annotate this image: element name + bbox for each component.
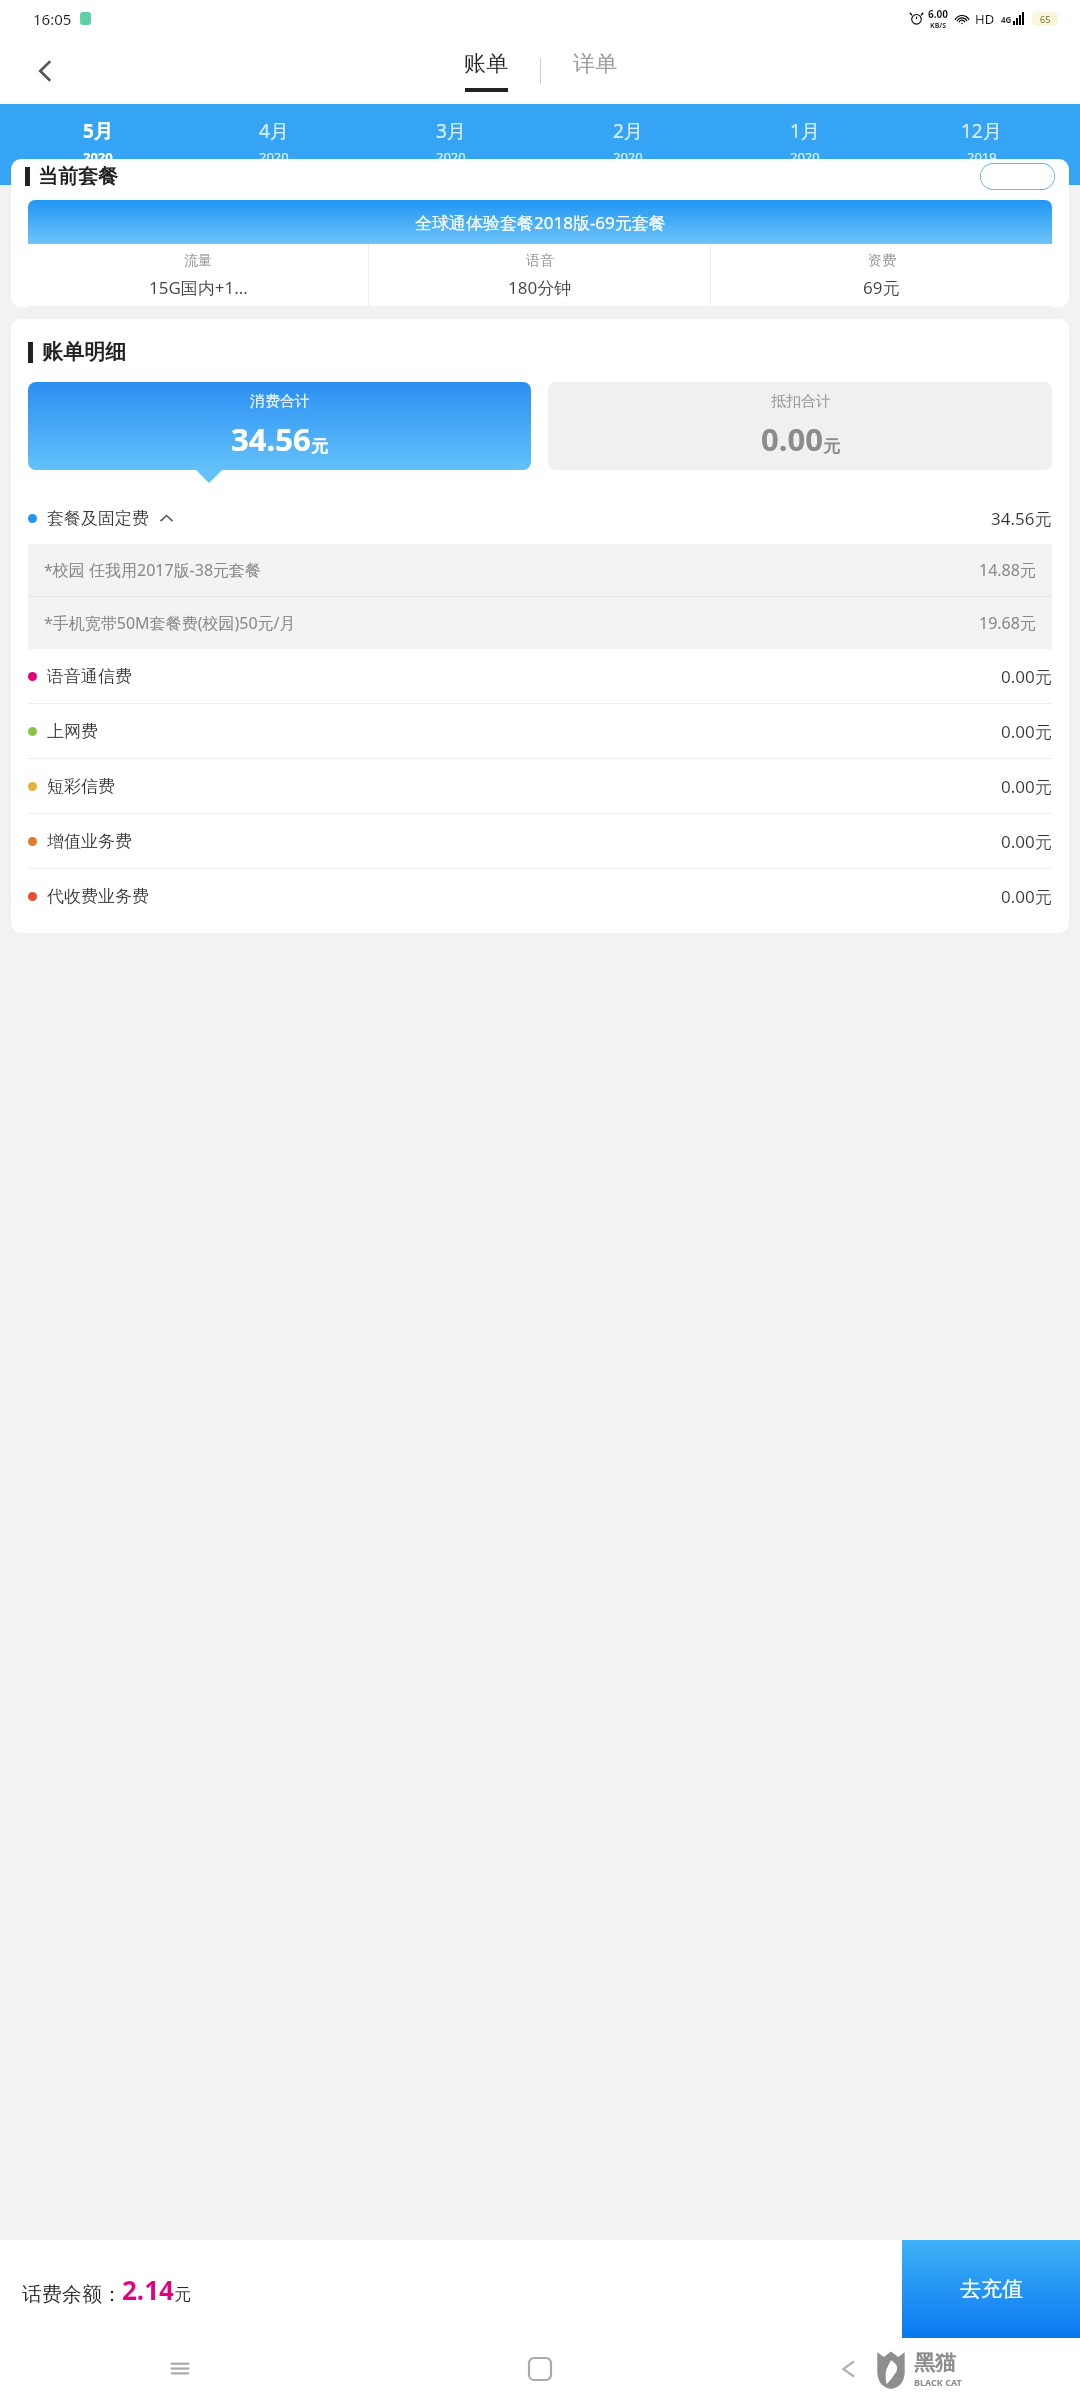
staticText: 2020: [259, 148, 289, 166]
staticText: 详单: [573, 50, 617, 78]
staticText: 34.56元: [991, 507, 1052, 530]
staticText: 2019: [967, 148, 997, 166]
button[interactable]: 1月: [716, 104, 893, 185]
staticText: 元: [311, 436, 328, 457]
staticText: 语音: [526, 252, 554, 270]
button[interactable]: Home: [360, 2338, 720, 2400]
staticText: 账单明细: [42, 339, 126, 365]
staticText: 65: [1040, 13, 1051, 25]
button[interactable]: 5月: [10, 104, 186, 185]
staticText: 180分钟: [508, 276, 572, 299]
staticText: 全球通体验套餐2018版-69元套餐: [415, 211, 666, 234]
button[interactable]: 增值业务费: [11, 814, 1069, 868]
staticText: HD: [975, 10, 995, 28]
button[interactable]: 语音通信费: [11, 649, 1069, 703]
staticText: 元: [823, 436, 840, 457]
button[interactable]: 4月: [186, 104, 362, 185]
staticText: 资费: [868, 252, 896, 270]
staticText: 套餐及固定费: [47, 508, 149, 529]
staticText: 15G国内+1…: [149, 276, 248, 299]
staticText: 元: [174, 2284, 191, 2305]
staticText: 2.14: [122, 2272, 174, 2307]
button[interactable]: Recents: [0, 2338, 360, 2400]
staticText: 69元: [863, 276, 900, 299]
staticText: 上网费: [47, 721, 98, 742]
button[interactable]: 2月: [539, 104, 716, 185]
staticText: KB/S: [930, 21, 947, 31]
staticText: 去充值: [960, 2276, 1023, 2302]
button[interactable]: *手机宽带50M套餐费(校园)50元/月: [28, 597, 1052, 649]
staticText: 16:05: [33, 9, 72, 29]
staticText: 2020: [613, 148, 643, 166]
staticText: 流量: [184, 252, 212, 270]
staticText: 3月: [436, 118, 466, 144]
button[interactable]: 详单: [563, 50, 627, 92]
staticText: 消费合计: [250, 392, 310, 411]
staticText: 0.00元: [1001, 665, 1052, 688]
staticText: 代收费业务费: [47, 886, 149, 907]
staticText: 语音通信费: [47, 666, 132, 687]
staticText: 1月: [790, 118, 820, 144]
staticText: 4G: [1001, 14, 1012, 25]
staticText: 5月: [83, 118, 113, 144]
staticText: *手机宽带50M套餐费(校园)50元/月: [44, 612, 296, 634]
staticText: 0.00元: [1001, 720, 1052, 743]
staticText: BLACK CAT: [914, 2376, 962, 2388]
button[interactable]: Back: [18, 44, 72, 98]
other: Back: [839, 2359, 859, 2379]
button[interactable]: [980, 163, 1055, 190]
button[interactable]: 套餐及固定费: [11, 492, 1069, 544]
staticText: 账单: [464, 50, 508, 78]
staticText: 19.68元: [979, 612, 1036, 634]
staticText: 34.56: [231, 418, 311, 460]
staticText: 2月: [613, 118, 643, 144]
button[interactable]: 3月: [362, 104, 539, 185]
staticText: 0.00元: [1001, 775, 1052, 798]
staticText: 话费余额：: [22, 2282, 122, 2307]
button[interactable]: 短彩信费: [11, 759, 1069, 813]
button[interactable]: *校园 任我用2017版-38元套餐: [28, 544, 1052, 596]
staticText: 2020: [83, 148, 113, 166]
staticText: 0.00: [761, 418, 823, 460]
staticText: 增值业务费: [47, 831, 132, 852]
staticText: 当前套餐: [38, 164, 118, 189]
staticText: 0.00元: [1001, 885, 1052, 908]
staticText: 14.88元: [979, 559, 1036, 581]
staticText: 6.00: [928, 7, 948, 21]
staticText: 短彩信费: [47, 776, 115, 797]
staticText: 2020: [790, 148, 820, 166]
staticText: 2020: [436, 148, 466, 166]
button[interactable]: 代收费业务费: [11, 869, 1069, 923]
staticText: 抵扣合计: [771, 392, 831, 411]
staticText: 4月: [259, 118, 289, 144]
button[interactable]: 上网费: [11, 704, 1069, 758]
staticText: 黑猫: [914, 2350, 956, 2376]
button[interactable]: 12月: [893, 104, 1070, 185]
staticText: 12月: [961, 118, 1002, 144]
button[interactable]: 去充值: [902, 2240, 1080, 2338]
staticText: *校园 任我用2017版-38元套餐: [44, 559, 262, 581]
button[interactable]: 账单: [454, 50, 518, 92]
staticText: 0.00元: [1001, 830, 1052, 853]
